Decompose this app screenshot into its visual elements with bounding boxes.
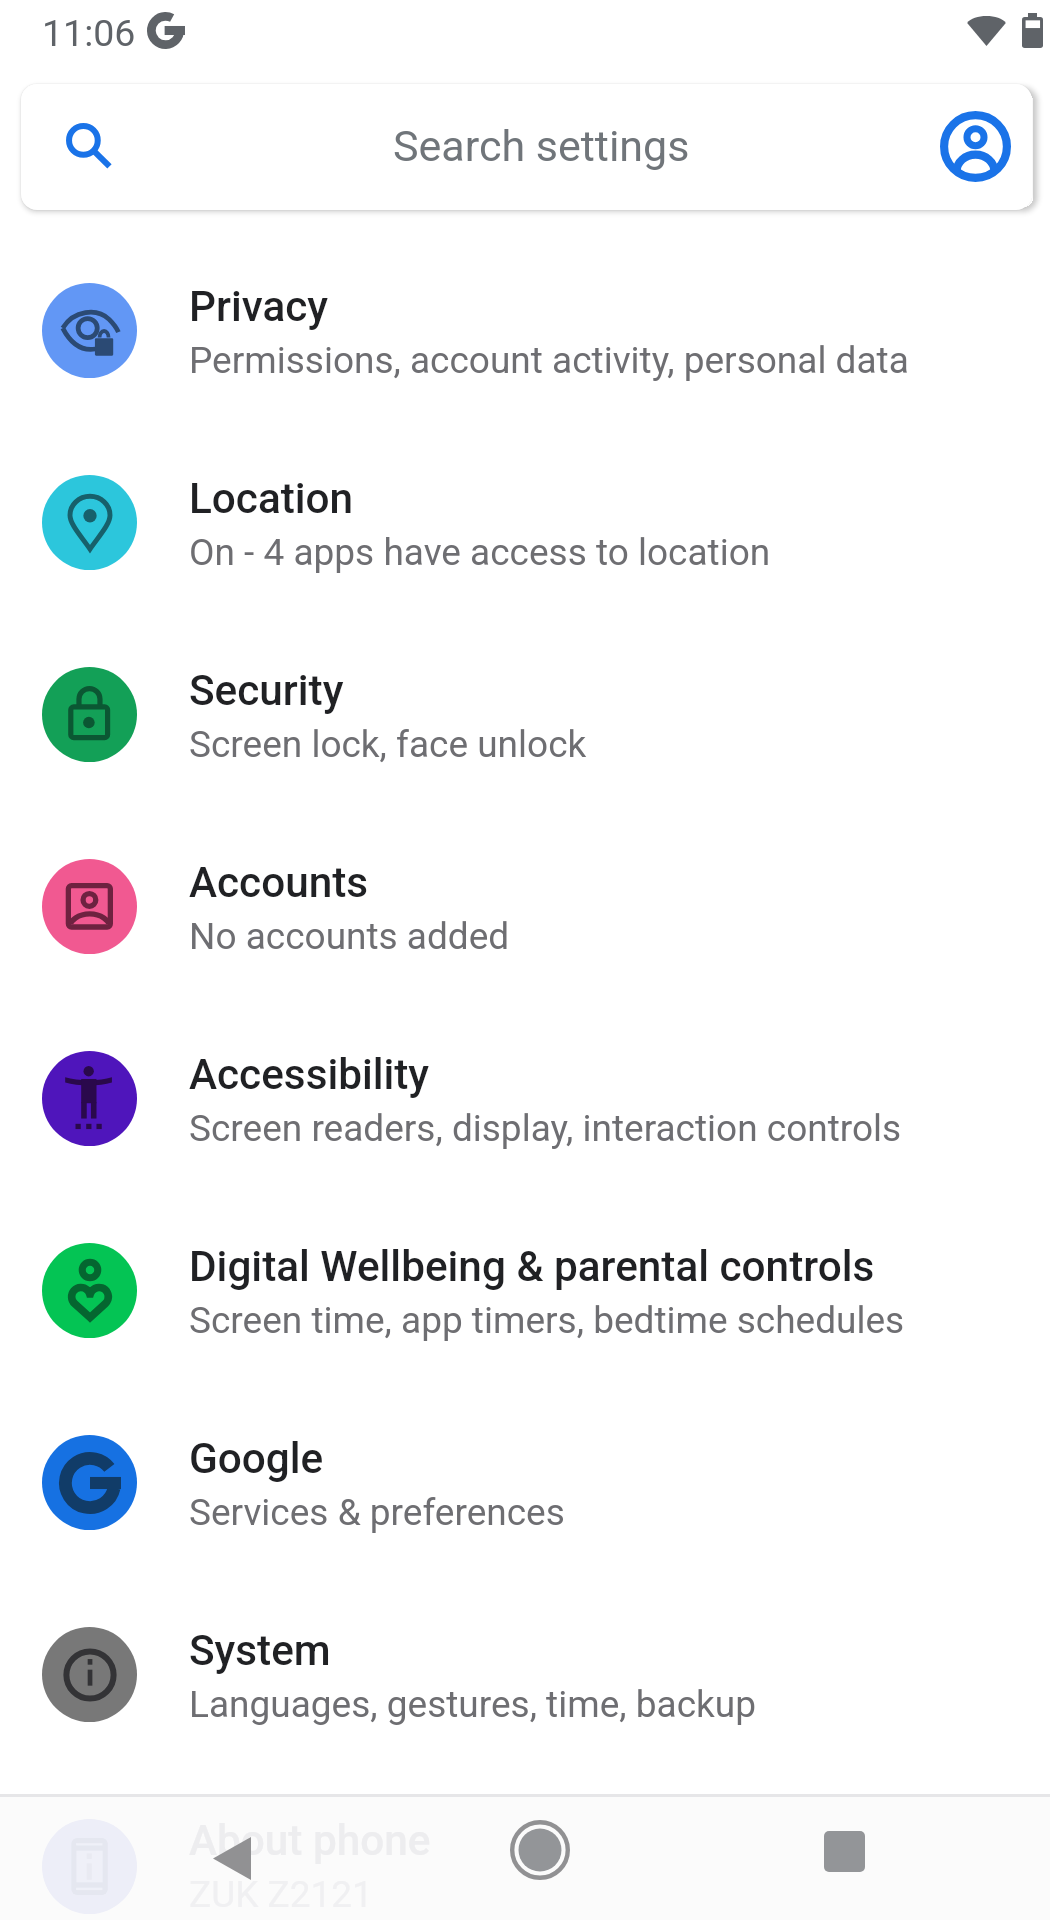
button[interactable]: System [0,1578,1050,1770]
staticText: Screen readers, display, interaction con… [189,1107,902,1150]
button[interactable]: Security [0,618,1050,810]
staticText: Languages, gestures, time, backup [189,1683,756,1726]
staticText: 11:06 [42,11,136,55]
staticText: System [189,1626,331,1676]
button[interactable]: About phone [0,1794,1050,1920]
staticText: Location [189,474,354,524]
button[interactable]: Privacy [0,234,1050,426]
staticText: Google [189,1434,324,1484]
button[interactable]: Accounts [0,810,1050,1002]
button[interactable]: Recent apps [806,1813,882,1889]
staticText: Digital Wellbeing & parental controls [189,1242,875,1292]
staticText: ZUK Z2121 [189,1873,373,1916]
button[interactable]: Accessibility [0,1002,1050,1194]
staticText: Privacy [189,282,328,332]
button[interactable]: Google [0,1386,1050,1578]
staticText: About phone [189,1816,431,1866]
staticText: On - 4 apps have access to location [189,531,771,574]
staticText: Accessibility [189,1050,430,1100]
staticText: Security [189,666,344,716]
staticText: Screen time, app timers, bedtime schedul… [189,1299,905,1342]
staticText: No accounts added [189,915,510,958]
staticText: Permissions, account activity, personal … [189,339,909,382]
button[interactable]: Location [0,426,1050,618]
staticText: Screen lock, face unlock [189,723,587,766]
staticText: Search settings [393,121,690,171]
staticText: Services & preferences [189,1491,565,1534]
other: Account [940,111,1011,182]
staticText: Accounts [189,858,369,908]
button[interactable]: Digital Wellbeing & parental controls [0,1194,1050,1386]
button[interactable]: Search [21,84,1032,210]
other: Search [66,123,112,169]
button[interactable]: Home [502,1812,578,1888]
button[interactable]: Back [194,1820,270,1896]
